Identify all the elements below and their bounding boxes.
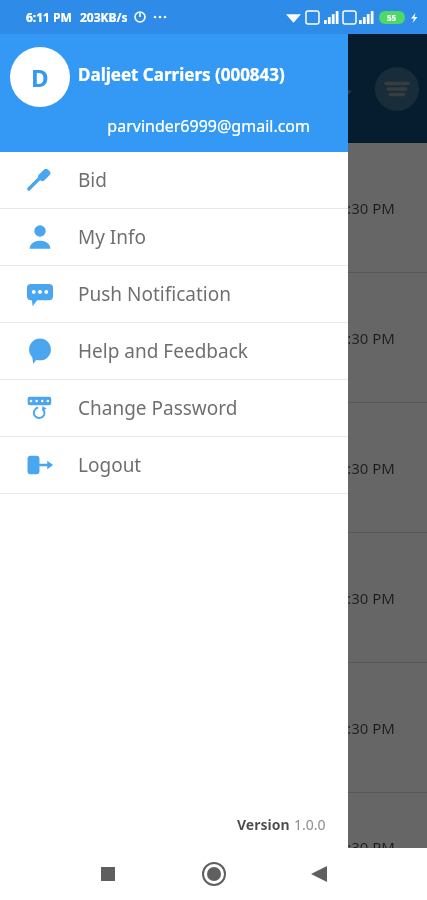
staticText: parvinder6999@gmail.com [107,115,310,137]
button[interactable]: Help and Feedback [0,323,348,379]
staticText: Help and Feedback [78,338,248,364]
staticText: 1.0.0 [294,815,326,834]
staticText: 203KB/s [80,9,128,25]
staticText: Version [237,815,294,834]
button[interactable]: Bid [0,152,348,208]
staticText: Bid [78,167,107,193]
staticText: 10:30 PM [330,328,395,348]
staticText: 55 [387,12,397,23]
staticText: 10:30 PM [330,588,395,608]
button[interactable]: My Info [0,209,348,265]
staticText: 10:30 PM [330,837,395,857]
button[interactable]: Logout [0,437,348,493]
staticText: 6:11 PM [26,9,72,25]
staticText: My Info [78,224,147,250]
button[interactable]: Change Password [0,380,348,436]
staticText: Logout [78,452,142,478]
button[interactable]: Filter [375,67,419,111]
button[interactable]: Back [301,856,337,892]
staticText: 10:30 PM [330,458,395,478]
staticText: Daljeet Carriers (000843) [78,63,285,86]
staticText: 10:30 PM [330,718,395,738]
button[interactable]: Recents [90,856,126,892]
staticText: Change Password [78,395,238,421]
staticText: D [31,61,49,94]
button[interactable]: Push Notification [0,266,348,322]
staticText: 10:30 PM [330,198,395,218]
staticText: 9 [330,425,339,444]
button[interactable]: Home [196,856,232,892]
staticText: Push Notification [78,281,231,307]
other: Download [330,74,360,104]
